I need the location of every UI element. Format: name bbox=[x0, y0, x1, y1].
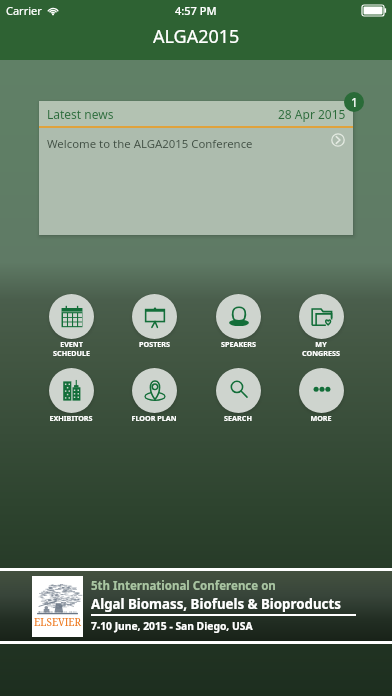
staticText: POSTERS bbox=[139, 339, 170, 349]
button[interactable]: FLOOR PLAN bbox=[113, 368, 195, 423]
staticText: Latest news bbox=[47, 106, 114, 122]
staticText: 4:57 PM bbox=[175, 3, 217, 18]
button[interactable]: EXHIBITORS bbox=[30, 368, 112, 423]
button[interactable]: SEARCH bbox=[197, 368, 279, 423]
button[interactable]: MORE bbox=[280, 368, 362, 423]
button[interactable]: POSTERS bbox=[113, 294, 195, 349]
button[interactable]: ELSEVIER bbox=[0, 571, 392, 641]
staticText: ALGA2015 bbox=[153, 24, 240, 49]
button[interactable]: EVENT SCHEDULE bbox=[30, 294, 112, 358]
staticText: 7-10 June, 2015 - San Diego, USA bbox=[91, 619, 253, 633]
button[interactable]: MY CONGRESS bbox=[280, 294, 362, 358]
button[interactable]: Latest news bbox=[39, 101, 353, 235]
staticText: SPEAKERS bbox=[221, 339, 256, 349]
staticText: EVENT SCHEDULE bbox=[53, 339, 90, 358]
staticText: SEARCH bbox=[224, 413, 252, 423]
staticText: FLOOR PLAN bbox=[131, 413, 177, 423]
staticText: Welcome to the ALGA2015 Conference bbox=[47, 136, 253, 152]
staticText: 28 Apr 2015 bbox=[278, 106, 346, 122]
staticText: Carrier bbox=[6, 3, 42, 18]
button[interactable]: SPEAKERS bbox=[197, 294, 279, 349]
staticText: Algal Biomass, Biofuels & Bioproducts bbox=[91, 595, 341, 613]
staticText: MORE bbox=[310, 413, 332, 423]
staticText: 5th International Conference on bbox=[91, 578, 276, 594]
staticText: MY CONGRESS bbox=[302, 339, 340, 358]
staticText: 1 bbox=[351, 94, 358, 110]
staticText: ELSEVIER bbox=[34, 615, 82, 629]
staticText: EXHIBITORS bbox=[49, 413, 93, 423]
